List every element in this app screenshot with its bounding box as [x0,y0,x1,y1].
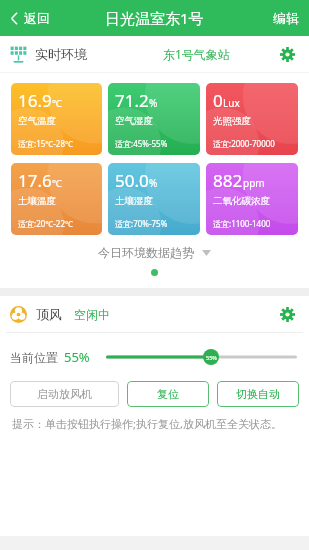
staticText: 复位 [157,387,179,401]
staticText: 882 [213,169,243,192]
staticText: 返回 [24,10,50,26]
staticText: 光照强度 [213,115,251,127]
staticText: ℃ [52,176,62,190]
staticText: 55% [206,354,217,361]
staticText: 71.2 [115,89,149,112]
button[interactable]: 返回 [0,6,58,30]
staticText: 适宜:2000-70000 [213,138,275,149]
staticText: 编辑 [273,10,299,26]
staticText: 二氧化碳浓度 [213,195,270,207]
button[interactable]: 东1号气象站 [157,42,236,66]
staticText: ℃ [52,96,62,110]
staticText: 适宜:15℃-28℃ [18,138,73,149]
staticText: 空气温度 [18,115,56,127]
staticText: 空气湿度 [115,115,153,127]
staticText: 土壤温度 [18,195,56,207]
button[interactable]: Settings [274,41,301,68]
button[interactable]: 55% [106,347,297,367]
button[interactable]: 编辑 [263,4,309,32]
button[interactable]: 16.9 [11,83,102,155]
staticText: 提示：单击按钮执行操作;执行复位,放风机至全关状态。 [12,416,297,431]
staticText: 切换自动 [236,387,280,401]
staticText: 适宜:20℃-22℃ [18,218,73,229]
button[interactable]: 50.0 [108,163,200,235]
staticText: % [149,176,158,190]
staticText: 17.6 [18,169,52,192]
staticText: 0 [213,89,223,112]
button[interactable]: Settings [274,301,301,328]
staticText: 适宜:45%-55% [115,138,168,149]
button[interactable]: 复位 [127,381,209,407]
button[interactable]: 切换自动 [217,381,299,407]
staticText: 实时环境 [35,46,87,62]
staticText: Lux [223,96,240,110]
staticText: 16.9 [18,89,52,112]
staticText: 空闲中 [74,307,110,322]
staticText: 当前位置 [10,350,58,365]
button[interactable]: 17.6 [11,163,102,235]
button[interactable]: 今日环境数据趋势 [0,245,309,260]
staticText: 适宜:70%-75% [115,218,168,229]
staticText: 55% [64,348,90,366]
staticText: % [149,96,158,110]
staticText: 启动放风机 [37,387,92,401]
staticText: 东1号气象站 [163,46,230,62]
button[interactable]: 882 [206,163,298,235]
button[interactable]: 0 [206,83,298,155]
staticText: 适宜:1100-1400 [213,218,271,229]
staticText: 日光温室东1号 [105,8,204,28]
button[interactable]: 启动放风机 [10,381,119,407]
staticText: 土壤湿度 [115,195,153,207]
button[interactable]: 71.2 [108,83,200,155]
staticText: 今日环境数据趋势 [98,245,194,260]
staticText: ppm [243,176,265,190]
staticText: 顶风 [36,306,62,322]
staticText: 50.0 [115,169,149,192]
